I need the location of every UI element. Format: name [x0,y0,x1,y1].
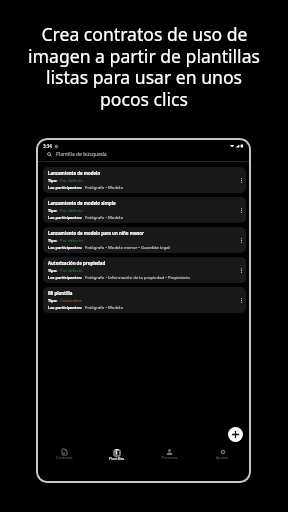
button[interactable]: Lanzamiento de modelo [43,167,246,193]
staticText: Plantillas [109,456,125,461]
staticText: imagen a partir de plantillas [28,44,260,68]
staticText: Crea contratos de uso de [41,22,248,46]
staticText: Los participantes: [48,185,83,190]
button[interactable]: Plantilla de búsqueda [47,150,243,158]
staticText: listas para usar en unos [46,65,242,89]
staticText: Fotógrafo • Modelo [85,215,123,221]
staticText: Tipo: [48,268,58,273]
staticText: Fotógrafo • Modelo menor • Guardián lega… [85,245,170,251]
button[interactable]: More options [236,197,246,223]
staticText: Por defecto [60,178,83,184]
staticText: 3:34 [43,143,52,149]
staticText: Ajustes [216,455,229,460]
button[interactable]: Lanzamiento de modelo simple [43,197,246,223]
button[interactable]: Add template [228,427,243,442]
staticText: Los participantes: [48,215,83,220]
button[interactable]: Mi plantilla [43,287,246,313]
button[interactable]: Plantillas [90,449,143,463]
staticText: Fotógrafo • Información de la propiedad … [85,275,190,281]
button[interactable]: Personas [143,449,196,463]
staticText: Lanzamiento de modelo [48,170,101,176]
staticText: pocos clics [100,87,188,111]
button[interactable]: Ajustes [196,449,249,463]
staticText: Los participantes: [48,275,83,280]
staticText: Costumbre [60,298,82,304]
staticText: Personas [162,455,178,460]
staticText: Lanzamiento de modelo para un niño menor [48,230,144,236]
staticText: Por defecto [60,238,83,244]
button[interactable]: Contratos [38,449,90,463]
staticText: Lanzamiento de modelo simple [48,200,116,206]
button[interactable]: More options [236,287,246,313]
staticText: Tipo: [48,208,58,213]
staticText: Tipo: [48,178,58,183]
staticText: Plantilla de búsqueda [56,151,107,158]
button[interactable]: More options [236,167,246,193]
staticText: Los participantes: [48,305,83,310]
staticText: Por defecto [60,208,83,214]
staticText: Fotógrafo • Modelo [85,185,123,191]
staticText: Los participantes: [48,245,83,250]
staticText: Tipo: [48,238,58,243]
button[interactable]: Lanzamiento de modelo para un niño menor [43,227,246,253]
staticText: Autorización de propiedad [48,260,106,266]
button[interactable]: More options [236,257,246,283]
staticText: Mi plantilla [48,290,73,296]
button[interactable]: More options [236,227,246,253]
staticText: Tipo: [48,298,58,303]
staticText: Fotógrafo • Modelo [85,305,123,311]
staticText: Contratos [56,455,73,460]
button[interactable]: Autorización de propiedad [43,257,246,283]
staticText: Por defecto [60,268,83,274]
